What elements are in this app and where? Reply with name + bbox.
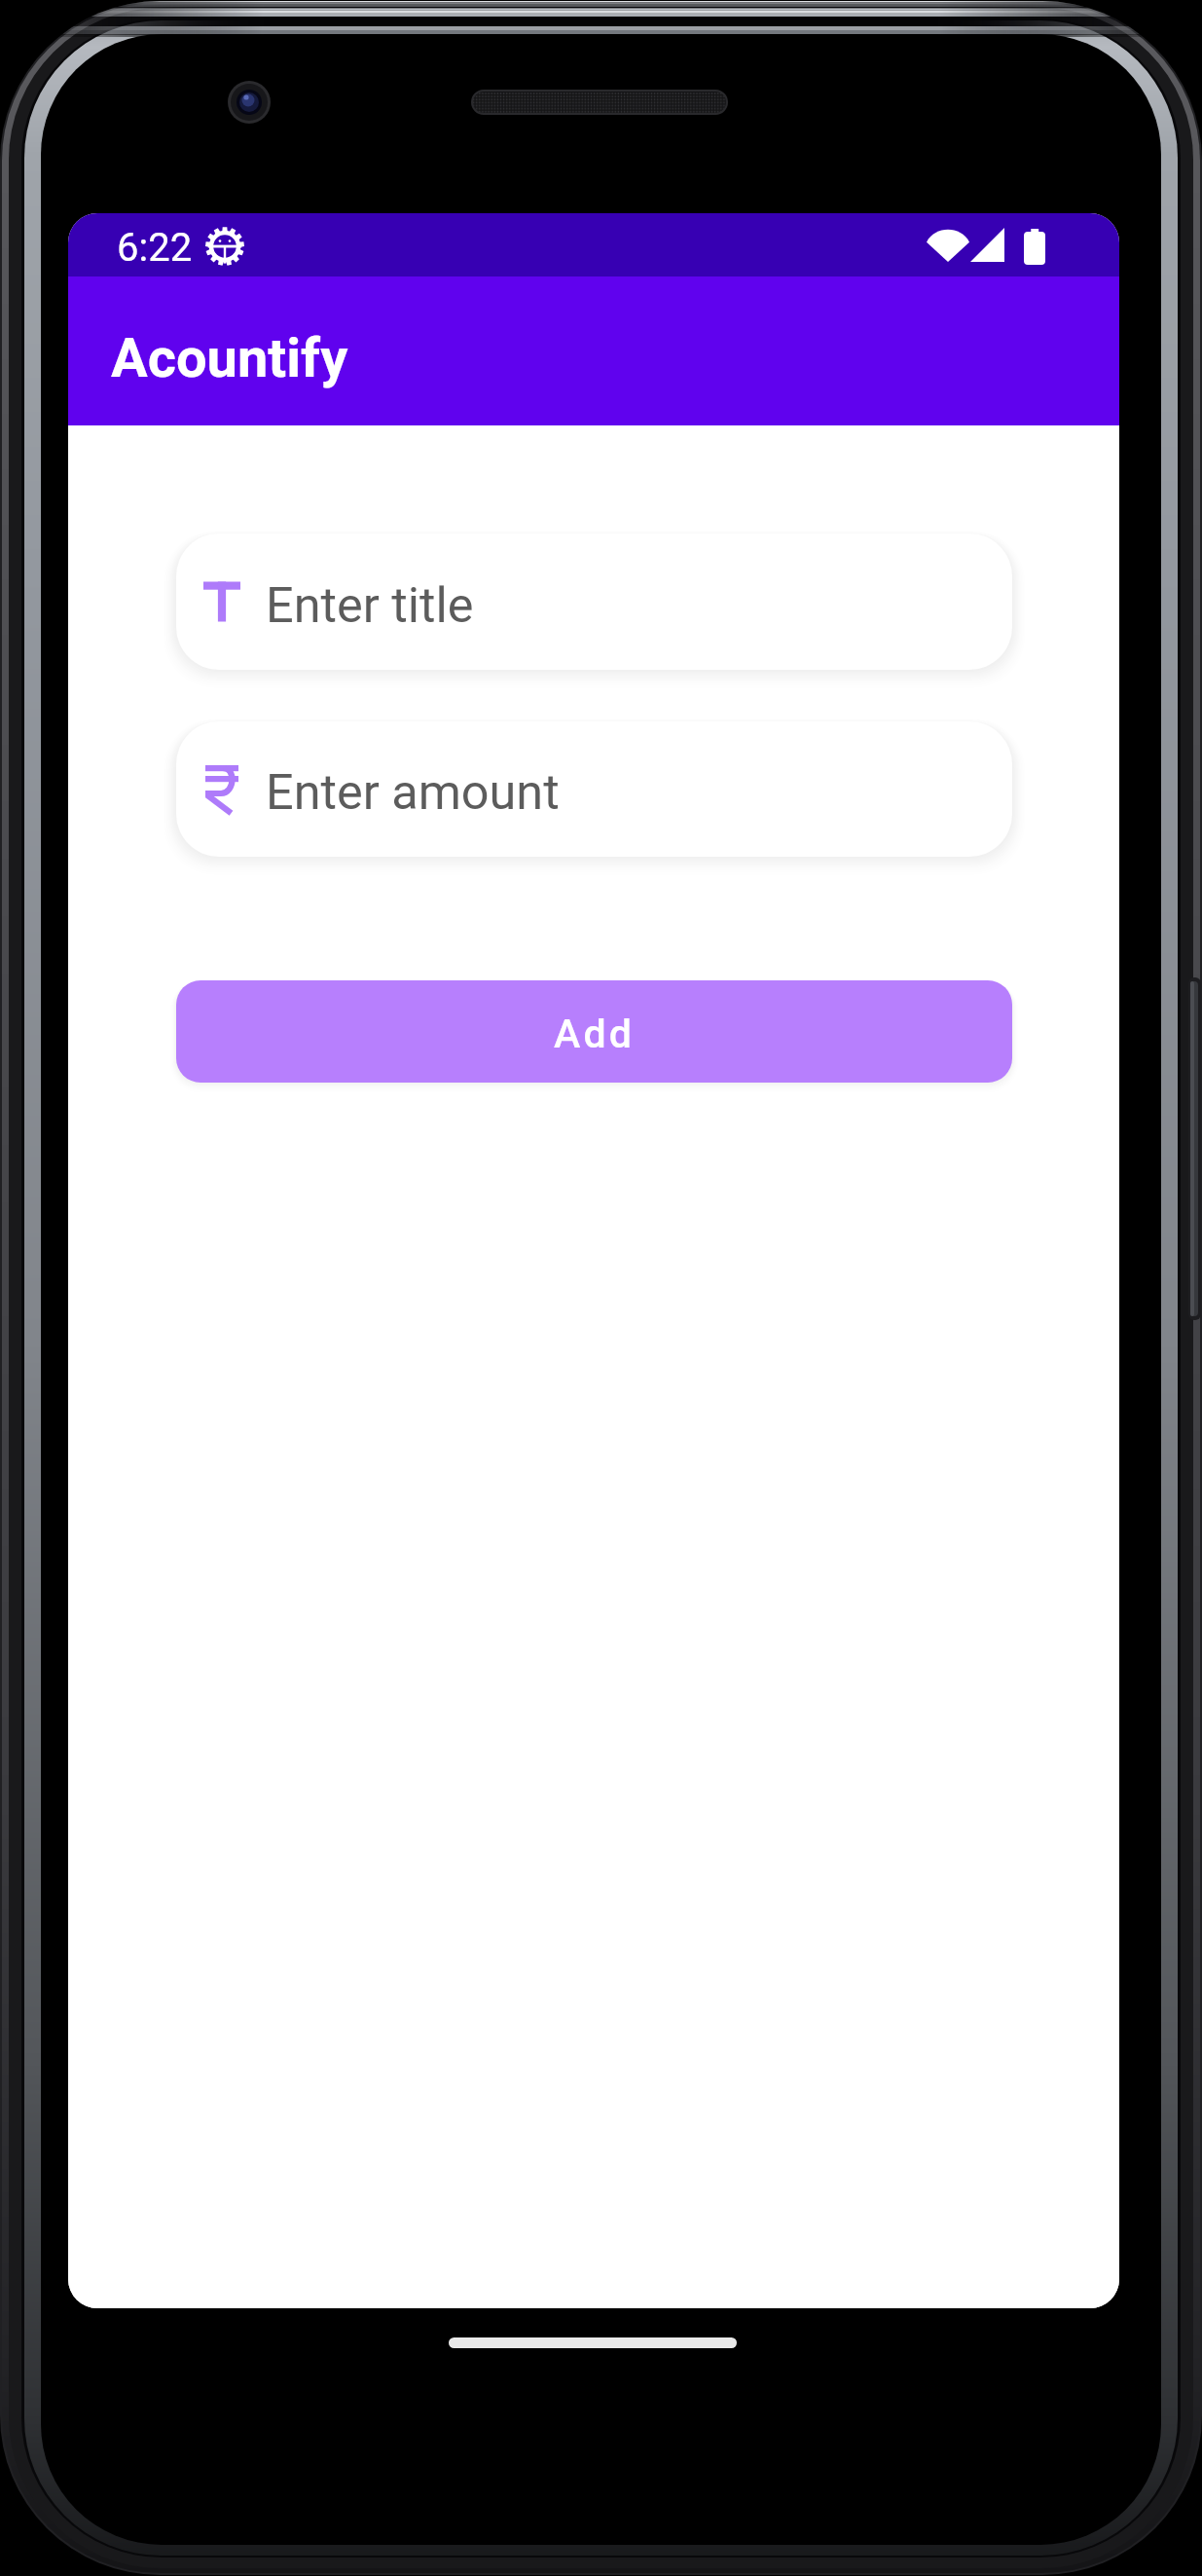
- other: Demo mode: [205, 227, 244, 266]
- staticText: Add: [554, 1011, 636, 1057]
- button[interactable]: Add: [176, 980, 1012, 1083]
- button[interactable]: Enter amount: [176, 721, 1012, 857]
- staticText: Enter title: [266, 576, 474, 634]
- staticText: Acountify: [111, 326, 348, 390]
- staticText: 6:22: [117, 225, 193, 271]
- button[interactable]: Enter title: [176, 534, 1012, 670]
- staticText: Enter amount: [266, 763, 560, 821]
